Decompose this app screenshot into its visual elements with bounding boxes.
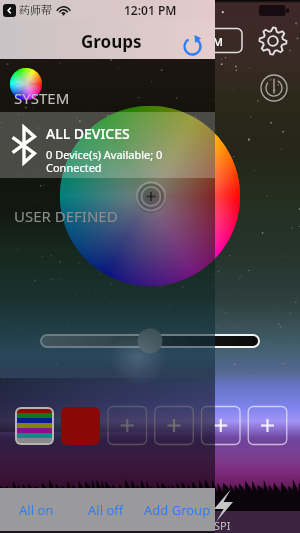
- staticText: All off: [88, 501, 124, 519]
- staticText: 12:01 PM: [124, 2, 177, 18]
- button[interactable]: Back: [3, 4, 16, 17]
- button[interactable]: Refresh: [179, 33, 206, 60]
- staticText: ALL DEVICES: [46, 124, 130, 143]
- button[interactable]: All on: [0, 488, 72, 531]
- button[interactable]: All off: [72, 488, 140, 531]
- staticText: USER DEFINED: [14, 206, 118, 226]
- staticText: All on: [19, 501, 54, 519]
- staticText: SYSTEM: [14, 88, 70, 108]
- button[interactable]: [17, 409, 52, 443]
- staticText: 药师帮: [19, 3, 52, 17]
- staticText: 0 Device(s) Available; 0 Connected: [46, 147, 163, 175]
- staticText: Add Group: [144, 501, 211, 519]
- button[interactable]: ALL DEVICES: [0, 112, 215, 178]
- button[interactable]: Add Group: [140, 488, 215, 531]
- staticText: SPI: [214, 518, 231, 533]
- staticText: CUSTOM: [177, 34, 223, 49]
- button[interactable]: [61, 407, 100, 445]
- staticText: Groups: [81, 30, 142, 53]
